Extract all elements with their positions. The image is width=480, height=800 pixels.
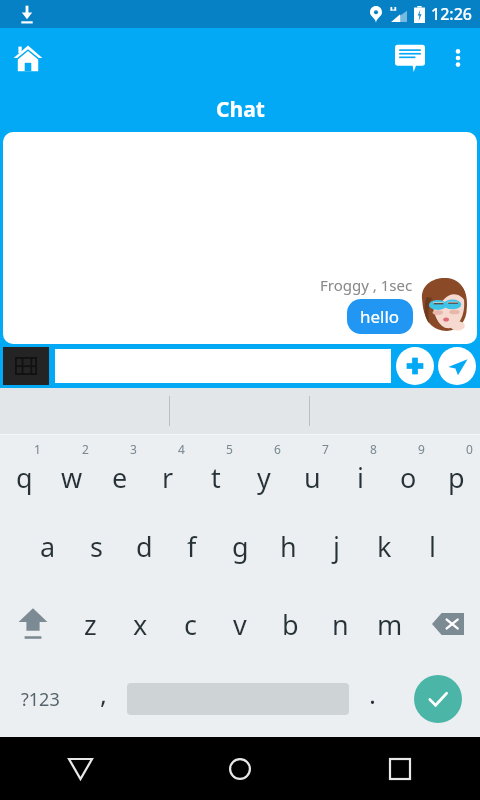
button[interactable]: z: [65, 585, 115, 663]
staticText: r: [162, 459, 174, 496]
staticText: i: [357, 459, 364, 496]
staticText: 5: [226, 441, 233, 457]
button[interactable]: h: [264, 507, 312, 585]
staticText: ?123: [21, 687, 60, 712]
button[interactable]: Backspace: [415, 585, 480, 663]
button[interactable]: 1: [0, 435, 48, 507]
button[interactable]: x: [115, 585, 165, 663]
staticText: 4: [178, 441, 185, 457]
button[interactable]: v: [215, 585, 265, 663]
button[interactable]: Home: [0, 30, 56, 86]
button[interactable]: b: [265, 585, 315, 663]
staticText: v: [233, 606, 247, 643]
staticText: h: [280, 528, 297, 565]
staticText: Chat: [216, 95, 265, 124]
staticText: 0: [466, 441, 473, 457]
button[interactable]: n: [315, 585, 365, 663]
staticText: 9: [418, 441, 425, 457]
staticText: y: [257, 459, 271, 496]
button[interactable]: ?123: [0, 663, 80, 735]
staticText: hello: [360, 305, 400, 328]
staticText: e: [112, 459, 128, 496]
staticText: 7: [322, 441, 329, 457]
button[interactable]: m: [365, 585, 415, 663]
button[interactable]: Home: [160, 737, 320, 800]
staticText: s: [90, 528, 103, 565]
button[interactable]: Enter: [396, 663, 480, 735]
button[interactable]: 6: [240, 435, 288, 507]
staticText: 6: [274, 441, 281, 457]
staticText: t: [211, 459, 221, 496]
button[interactable]: 7: [288, 435, 336, 507]
button[interactable]: 2: [48, 435, 96, 507]
button[interactable]: Back: [0, 737, 160, 800]
button[interactable]: hello: [347, 299, 413, 334]
staticText: Froggy , 1sec: [320, 275, 413, 295]
button[interactable]: 8: [336, 435, 384, 507]
button[interactable]: l: [408, 507, 456, 585]
button[interactable]: Messages: [384, 32, 436, 84]
button[interactable]: .: [349, 663, 396, 735]
staticText: f: [187, 528, 197, 565]
staticText: 1: [34, 441, 41, 457]
button[interactable]: Froggy avatar: [417, 276, 469, 334]
staticText: 3: [130, 441, 137, 457]
staticText: q: [16, 459, 33, 496]
staticText: d: [136, 528, 153, 565]
staticText: 12:26: [431, 3, 472, 25]
button[interactable]: d: [120, 507, 168, 585]
staticText: .: [369, 676, 376, 711]
button[interactable]: Recent apps: [320, 737, 480, 800]
staticText: o: [400, 459, 417, 496]
button[interactable]: 0: [432, 435, 480, 507]
button[interactable]: 4: [144, 435, 192, 507]
staticText: j: [333, 528, 340, 565]
staticText: x: [133, 606, 148, 643]
staticText: c: [184, 606, 197, 643]
button[interactable]: Add: [396, 347, 434, 385]
button[interactable]: 5: [192, 435, 240, 507]
staticText: a: [40, 528, 56, 565]
button[interactable]: f: [168, 507, 216, 585]
button[interactable]: g: [216, 507, 264, 585]
staticText: n: [332, 606, 349, 643]
staticText: b: [282, 606, 299, 643]
button[interactable]: More options: [436, 36, 480, 80]
staticText: 2: [82, 441, 89, 457]
staticText: z: [84, 606, 97, 643]
staticText: m: [377, 606, 403, 643]
staticText: ,: [100, 676, 107, 711]
staticText: u: [304, 459, 321, 496]
staticText: p: [448, 459, 465, 496]
button[interactable]: 9: [384, 435, 432, 507]
staticText: w: [61, 459, 83, 496]
button[interactable]: Attach media: [3, 347, 49, 385]
button[interactable]: a: [24, 507, 72, 585]
button[interactable]: s: [72, 507, 120, 585]
staticText: l: [429, 528, 436, 565]
button[interactable]: ,: [80, 663, 127, 735]
button[interactable]: Send: [438, 347, 476, 385]
button[interactable]: k: [360, 507, 408, 585]
staticText: 8: [370, 441, 377, 457]
button[interactable]: j: [312, 507, 360, 585]
staticText: g: [232, 528, 249, 565]
button[interactable]: 3: [96, 435, 144, 507]
staticText: k: [377, 528, 392, 565]
button[interactable]: Shift: [0, 585, 65, 663]
button[interactable]: c: [165, 585, 215, 663]
